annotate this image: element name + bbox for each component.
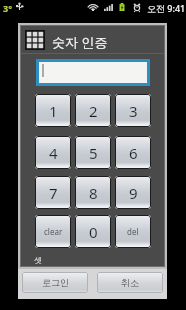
- staticText: 셋: [34, 255, 42, 265]
- button[interactable]: 9: [115, 176, 151, 209]
- button[interactable]: 2: [75, 94, 111, 127]
- button[interactable]: 6: [115, 136, 151, 169]
- staticText: 오전 9:41: [147, 2, 186, 14]
- staticText: 취소: [121, 277, 139, 288]
- button[interactable]: clear: [35, 215, 71, 248]
- staticText: 6: [129, 143, 138, 163]
- staticText: clear: [44, 226, 63, 237]
- button[interactable]: 4: [35, 136, 71, 169]
- staticText: 3°: [3, 2, 12, 14]
- button[interactable]: 0: [75, 215, 111, 248]
- button[interactable]: 7: [35, 176, 71, 209]
- staticText: 2: [89, 101, 98, 121]
- staticText: del: [127, 226, 139, 237]
- button[interactable]: 1: [35, 94, 71, 127]
- staticText: 0: [89, 222, 98, 242]
- button[interactable]: 5: [75, 136, 111, 169]
- staticText: 숫자 인증: [52, 33, 108, 51]
- button[interactable]: 3: [115, 94, 151, 127]
- staticText: 4: [49, 143, 58, 163]
- staticText: 1: [49, 101, 58, 121]
- button[interactable]: 8: [75, 176, 111, 209]
- staticText: 7: [49, 183, 58, 203]
- staticText: 3: [129, 101, 138, 121]
- staticText: 9: [129, 183, 138, 203]
- button[interactable]: 로그인: [22, 272, 88, 293]
- staticText: 8: [89, 183, 98, 203]
- button[interactable]: del: [115, 215, 151, 248]
- staticText: 5: [89, 143, 98, 163]
- button[interactable]: 취소: [97, 272, 163, 293]
- staticText: 로그인: [42, 277, 69, 288]
